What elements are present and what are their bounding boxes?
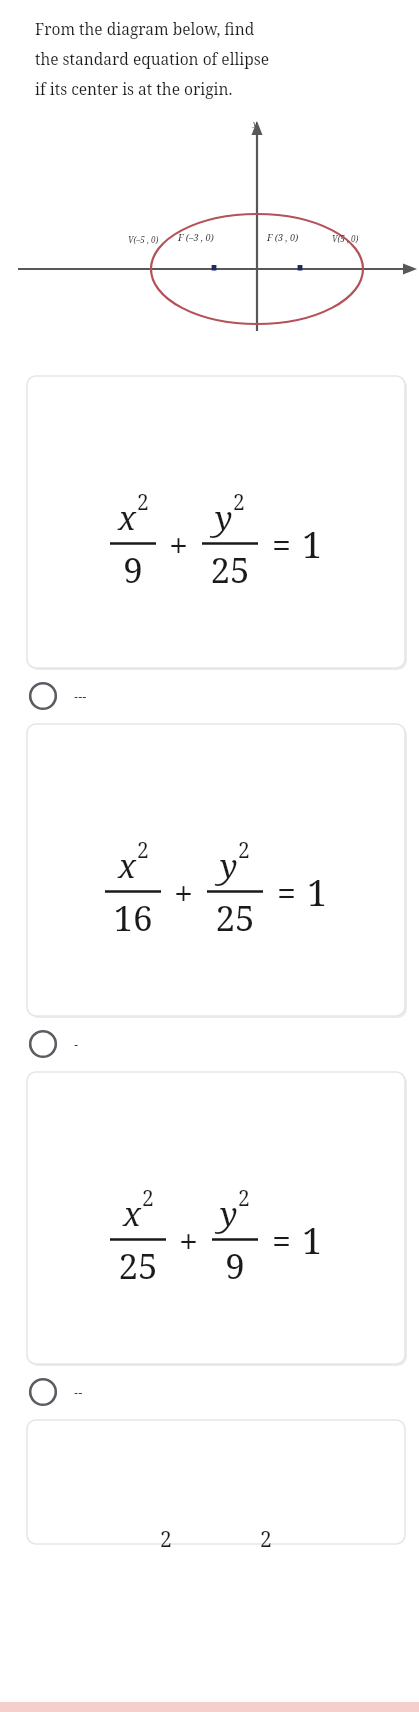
staticText: 2 [137, 836, 149, 865]
staticText: 1 [307, 868, 328, 917]
staticText: = [272, 1218, 292, 1264]
staticText: 16 [113, 894, 153, 942]
staticText: 2 [260, 1525, 272, 1554]
staticText: = [272, 522, 292, 568]
button[interactable]: 2 [27, 1420, 405, 1544]
staticText: 25 [118, 1242, 158, 1290]
other: Select option [28, 1029, 58, 1059]
staticText: x [123, 1191, 142, 1236]
staticText: --- [74, 687, 87, 705]
button[interactable]: Select option [0, 1364, 419, 1420]
staticText: 2 [142, 1184, 154, 1213]
staticText: if its center is at the origin. [35, 78, 233, 99]
staticText: y [220, 1191, 238, 1236]
button[interactable]: x [27, 376, 405, 668]
staticText: 9 [225, 1242, 245, 1290]
staticText: x [118, 843, 137, 888]
staticText: From the diagram below, find [35, 18, 255, 39]
staticText: - [74, 1035, 79, 1053]
staticText: + [174, 870, 194, 916]
staticText: F (3 , 0) [267, 231, 299, 243]
staticText: 1 [302, 1216, 323, 1265]
staticText: 1 [302, 520, 323, 569]
button[interactable]: Select option [0, 668, 419, 724]
other: Select option [28, 681, 58, 711]
staticText: x [118, 495, 137, 540]
staticText: = [277, 870, 297, 916]
staticText: 2 [238, 836, 250, 865]
staticText: F (–3 , 0) [178, 231, 214, 243]
button[interactable]: x [27, 1072, 405, 1364]
staticText: y [215, 495, 233, 540]
staticText: 2 [160, 1525, 172, 1554]
button[interactable]: Select option [0, 1016, 419, 1072]
staticText: 2 [238, 1184, 250, 1213]
staticText: y [220, 843, 238, 888]
button[interactable]: x [27, 724, 405, 1016]
other: Select option [28, 1377, 58, 1407]
staticText: V(–5 , 0) [128, 234, 159, 245]
staticText: -- [74, 1383, 83, 1401]
staticText: y [253, 118, 258, 128]
staticText: + [179, 1218, 199, 1264]
staticText: + [169, 522, 189, 568]
staticText: the standard equation of ellipse [35, 48, 270, 69]
staticText: 2 [137, 488, 149, 517]
staticText: 2 [233, 488, 245, 517]
staticText: 9 [123, 546, 143, 594]
staticText: V(5 , 0) [332, 233, 359, 244]
staticText: 25 [215, 894, 255, 942]
staticText: 25 [210, 546, 250, 594]
